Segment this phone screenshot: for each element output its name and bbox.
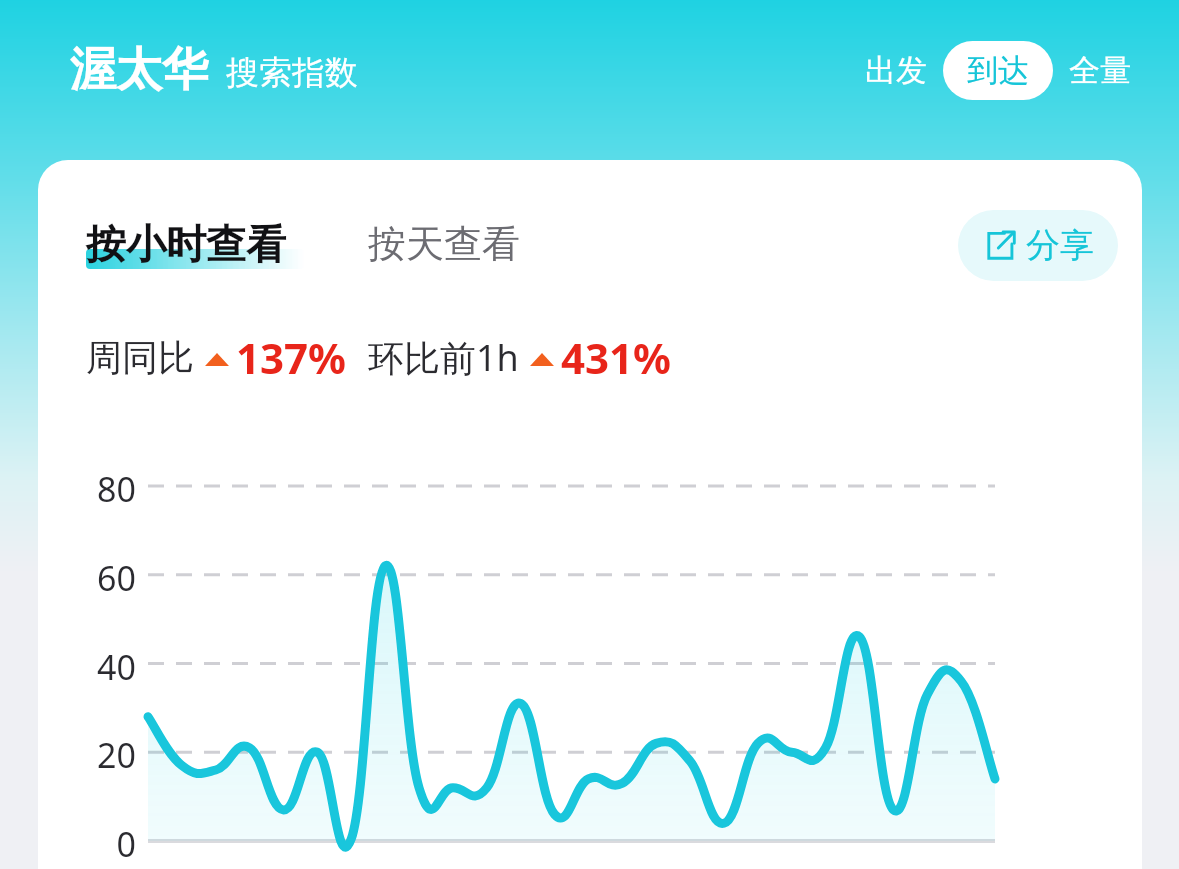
button[interactable]: Share xyxy=(958,210,1118,281)
staticText: 0 xyxy=(78,821,136,867)
staticText: 60 xyxy=(78,555,136,601)
staticText: 80 xyxy=(78,466,136,512)
button[interactable]: 按天查看 xyxy=(368,220,520,272)
button[interactable]: 全量 xyxy=(1061,41,1139,100)
staticText: 按小时查看 xyxy=(86,219,286,269)
staticText: 周同比 xyxy=(86,335,194,380)
other: Share xyxy=(982,229,1016,263)
button[interactable]: 出发 xyxy=(857,41,935,100)
staticText: 按天查看 xyxy=(368,220,520,268)
button[interactable]: 到达 xyxy=(943,41,1053,100)
button[interactable]: 按小时查看 xyxy=(86,219,304,273)
staticText: 20 xyxy=(78,732,136,778)
staticText: 分享 xyxy=(1026,224,1094,267)
staticText: 渥太华 xyxy=(70,41,208,99)
staticText: 137% xyxy=(236,329,346,386)
staticText: 431% xyxy=(561,329,671,386)
staticText: 到达 xyxy=(967,51,1029,90)
staticText: 环比前1h xyxy=(368,333,519,382)
staticText: 全量 xyxy=(1069,51,1131,90)
staticText: 出发 xyxy=(865,51,927,90)
staticText: 40 xyxy=(78,644,136,690)
staticText: 搜索指数 xyxy=(226,52,358,94)
